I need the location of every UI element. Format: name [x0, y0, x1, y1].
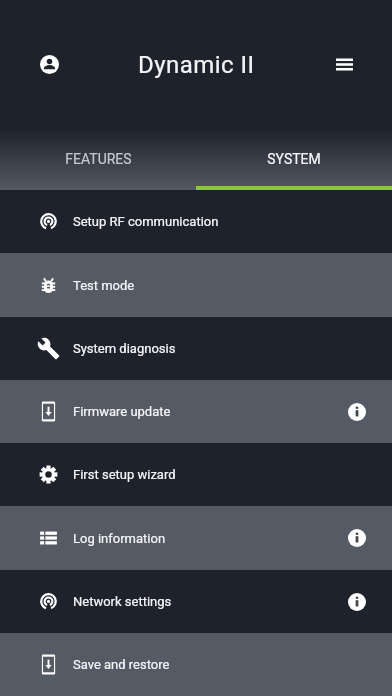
staticText: FEATURES: [65, 151, 132, 167]
staticText: Setup RF communication: [73, 214, 322, 229]
staticText: System diagnosis: [73, 341, 322, 356]
button[interactable]: Firmware update: [0, 380, 392, 443]
button[interactable]: Account: [29, 44, 69, 84]
button[interactable]: Setup RF communication: [0, 190, 392, 253]
button[interactable]: Test mode: [0, 253, 392, 317]
button[interactable]: System diagnosis: [0, 317, 392, 380]
button[interactable]: Network settings: [0, 570, 392, 633]
staticText: Save and restore: [73, 657, 322, 672]
button[interactable]: Save and restore: [0, 633, 392, 696]
button[interactable]: Log information: [0, 506, 392, 570]
staticText: Network settings: [73, 594, 322, 609]
staticText: Firmware update: [73, 404, 322, 419]
button[interactable]: FEATURES: [0, 128, 196, 190]
staticText: First setup wizard: [73, 467, 322, 482]
button[interactable]: Menu: [324, 44, 364, 84]
staticText: Test mode: [73, 278, 322, 293]
staticText: Log information: [73, 531, 322, 546]
staticText: SYSTEM: [267, 151, 321, 167]
staticText: Dynamic II: [138, 51, 255, 79]
button[interactable]: SYSTEM: [196, 128, 392, 190]
button[interactable]: First setup wizard: [0, 443, 392, 506]
